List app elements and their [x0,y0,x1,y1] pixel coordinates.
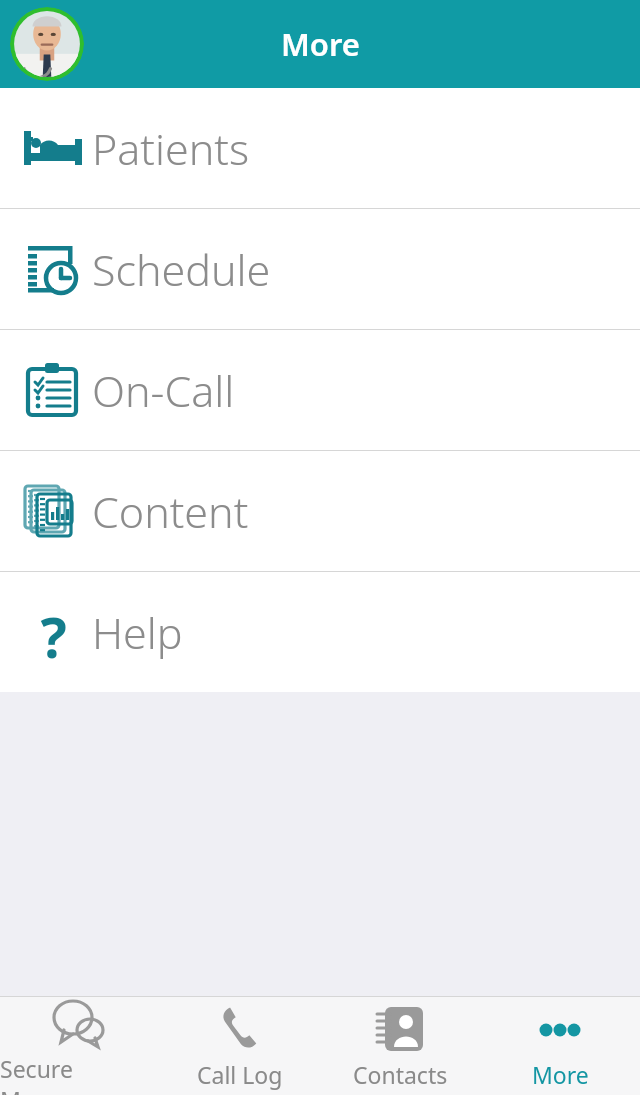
button[interactable]: Profile [10,7,84,81]
button[interactable]: Call Log [160,997,320,1095]
button[interactable]: More [480,997,640,1095]
staticText: On-Call [92,361,235,420]
staticText: Contacts [353,1059,448,1090]
staticText: Help [92,603,183,662]
button[interactable]: ? [0,572,640,692]
button[interactable]: Content [0,451,640,571]
staticText: Call Log [197,1059,283,1090]
button[interactable]: Patients [0,88,640,208]
button[interactable]: Schedule [0,209,640,329]
button[interactable]: Secure Messages [0,997,160,1095]
staticText: Content [92,482,249,541]
staticText: Secure Messages [0,1053,160,1095]
button[interactable]: Contacts [320,997,480,1095]
staticText: More [532,1059,589,1090]
staticText: Schedule [92,240,271,299]
staticText: Patients [92,119,250,178]
staticText: More [281,23,360,65]
staticText: ? [40,599,67,665]
button[interactable]: On-Call [0,330,640,450]
